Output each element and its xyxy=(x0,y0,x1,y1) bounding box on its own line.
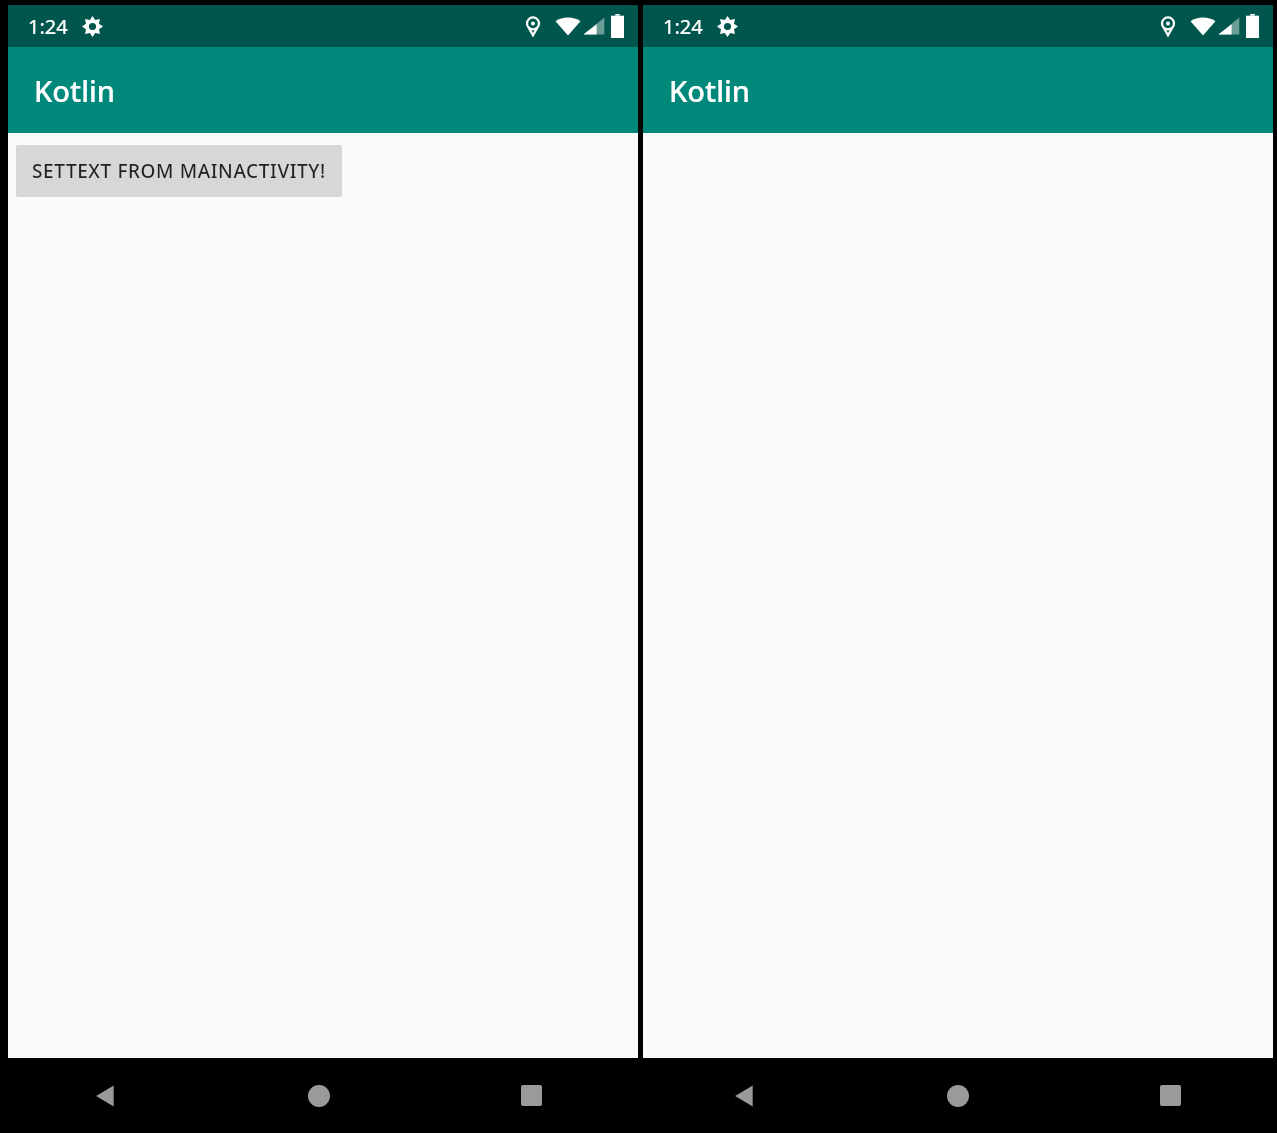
button[interactable]: Recent apps xyxy=(1064,1058,1277,1133)
button[interactable]: Back xyxy=(0,1058,212,1133)
button[interactable]: Back xyxy=(638,1058,851,1133)
staticText: Kotlin xyxy=(669,71,750,110)
button[interactable]: SETTEXT FROM MAINACTIVITY! xyxy=(16,145,342,197)
button[interactable]: Home xyxy=(212,1058,425,1133)
staticText: 1:24 xyxy=(663,13,703,40)
staticText: 1:24 xyxy=(28,13,68,40)
button[interactable]: Recent apps xyxy=(425,1058,638,1133)
button[interactable]: Home xyxy=(851,1058,1064,1133)
staticText: Kotlin xyxy=(34,71,115,110)
staticText: SETTEXT FROM MAINACTIVITY! xyxy=(32,158,326,184)
